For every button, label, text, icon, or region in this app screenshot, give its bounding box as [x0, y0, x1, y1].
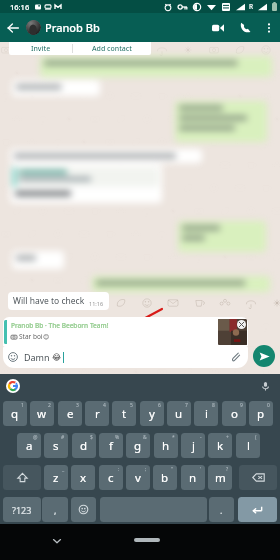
button[interactable]: Emoji	[71, 497, 96, 522]
staticText: Invite	[31, 44, 51, 54]
button[interactable]: More options	[258, 13, 280, 42]
staticText: l	[247, 438, 250, 454]
button[interactable]: p	[249, 401, 273, 426]
button[interactable]: Google	[6, 379, 20, 393]
staticText: 7	[185, 402, 188, 409]
button[interactable]: k	[208, 433, 232, 458]
button[interactable]: x	[71, 465, 95, 490]
staticText: :	[118, 466, 120, 473]
staticText: x	[80, 470, 87, 486]
button[interactable]: y	[140, 401, 164, 426]
button[interactable]: .	[209, 497, 234, 522]
staticText: Damn	[24, 351, 50, 363]
staticText: Will have to check	[13, 295, 85, 307]
staticText: q	[11, 406, 19, 422]
staticText: *	[172, 434, 175, 441]
staticText: t	[122, 406, 127, 422]
button[interactable]: Profile picture	[26, 20, 41, 35]
button[interactable]: z	[44, 465, 68, 490]
staticText: 3	[76, 402, 79, 409]
staticText: &	[143, 434, 147, 441]
staticText: b	[161, 470, 169, 486]
button[interactable]: Pranob Bb · The Beeborn Team!	[3, 317, 248, 346]
button[interactable]: o	[222, 401, 246, 426]
button[interactable]: d	[72, 433, 96, 458]
staticText: r	[95, 406, 100, 422]
staticText: g	[134, 438, 142, 454]
button[interactable]: Pranob Bb	[45, 13, 205, 42]
staticText: 5	[130, 402, 133, 409]
button[interactable]: Hide keyboard	[50, 534, 64, 548]
staticText: d	[80, 438, 88, 454]
staticText: p	[257, 406, 265, 422]
button[interactable]: Back	[0, 13, 26, 42]
button[interactable]: Enter	[238, 497, 277, 522]
staticText: R	[249, 2, 254, 11]
staticText: ;	[145, 466, 147, 473]
button[interactable]: a	[17, 433, 41, 458]
staticText: m	[215, 470, 226, 486]
button[interactable]: c	[99, 465, 123, 490]
button[interactable]: j	[181, 433, 205, 458]
button[interactable]: v	[126, 465, 150, 490]
button[interactable]: b	[153, 465, 177, 490]
staticText: 0	[267, 402, 270, 409]
button[interactable]: Send	[253, 345, 275, 367]
button[interactable]: Shift	[3, 465, 41, 490]
button[interactable]: Voice input	[258, 379, 272, 393]
button[interactable]: Damn	[3, 346, 248, 368]
staticText: v	[135, 470, 141, 486]
button[interactable]: g	[126, 433, 150, 458]
button[interactable]: Call	[232, 13, 258, 42]
button[interactable]: s	[44, 433, 68, 458]
button[interactable]: Video call	[205, 13, 231, 42]
staticText: (	[255, 434, 257, 441]
button[interactable]: ?123	[3, 497, 41, 522]
button[interactable]: n	[181, 465, 205, 490]
staticText: "	[171, 466, 174, 473]
button[interactable]: t	[112, 401, 136, 426]
staticText: 16:16	[10, 2, 30, 12]
staticText: h	[162, 438, 170, 454]
button[interactable]: l	[236, 433, 260, 458]
button[interactable]: i	[194, 401, 218, 426]
staticText: o	[231, 406, 238, 422]
staticText: n	[189, 470, 197, 486]
button[interactable]: Will have to check	[8, 292, 109, 310]
button[interactable]: Remove attachment	[237, 320, 246, 329]
button[interactable]: m	[208, 465, 232, 490]
staticText: .	[220, 504, 223, 516]
button[interactable]: q	[3, 401, 27, 426]
staticText: 9	[240, 402, 243, 409]
staticText: 6	[158, 402, 161, 409]
staticText: %	[115, 434, 120, 441]
button[interactable]: f	[99, 433, 123, 458]
staticText: w	[37, 406, 47, 422]
staticText: Pranob Bb	[45, 20, 100, 35]
staticText: s	[53, 438, 59, 454]
staticText: 11:16	[89, 300, 104, 307]
button[interactable]: u	[167, 401, 191, 426]
staticText: ,	[54, 504, 57, 516]
staticText: -	[200, 434, 202, 441]
staticText: $	[90, 434, 93, 441]
button[interactable]: r	[85, 401, 109, 426]
staticText: #	[61, 434, 65, 441]
button[interactable]: e	[58, 401, 82, 426]
staticText: Pranob Bb · The Beeborn Team!	[11, 321, 109, 330]
staticText: a	[26, 438, 33, 454]
staticText: j	[192, 438, 195, 454]
button[interactable]: ,	[42, 497, 68, 522]
staticText: 😊	[43, 333, 50, 340]
button[interactable]: Add contact	[73, 42, 151, 55]
button[interactable]: h	[154, 433, 178, 458]
staticText: f	[109, 438, 113, 454]
button[interactable]: w	[30, 401, 54, 426]
staticText: u	[175, 406, 183, 422]
staticText: y	[149, 406, 155, 422]
button[interactable]: Home	[134, 538, 160, 542]
button[interactable]: Invite	[9, 42, 72, 55]
button[interactable]: Backspace	[239, 465, 277, 490]
staticText: 1	[21, 402, 24, 409]
